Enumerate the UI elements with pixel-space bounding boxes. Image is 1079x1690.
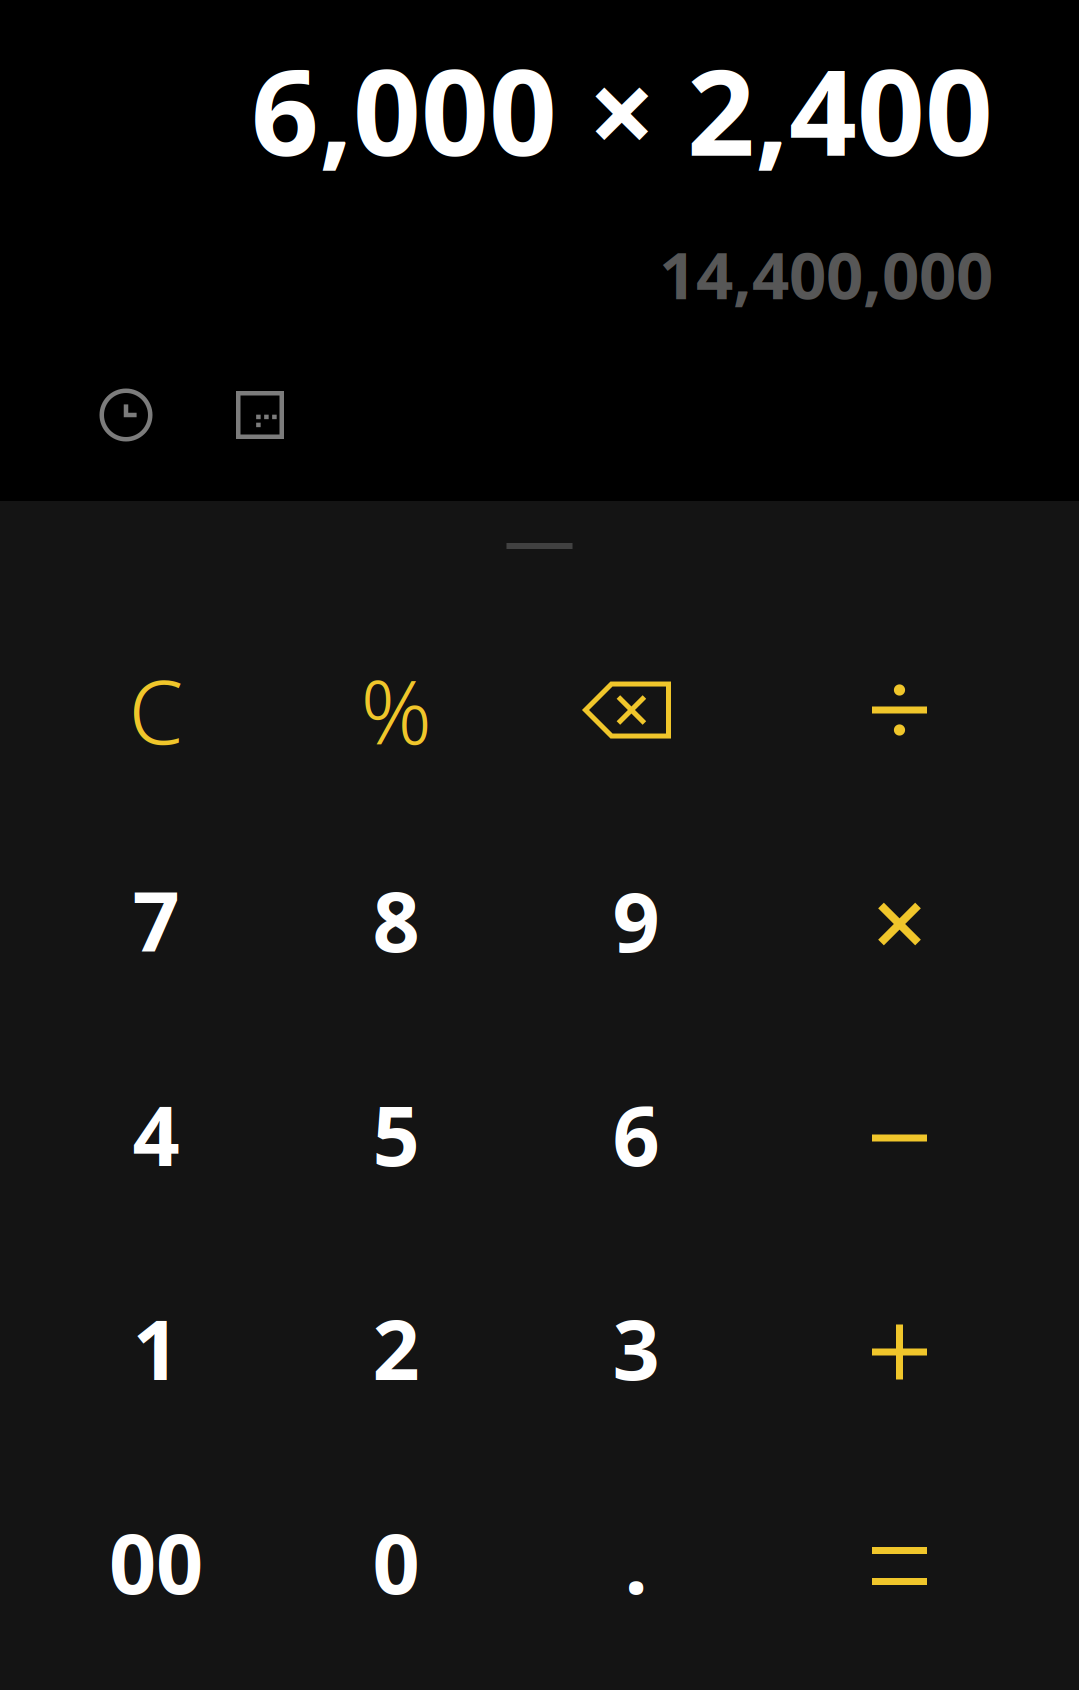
staticText: C — [128, 652, 183, 768]
button[interactable]: 1 — [36, 1245, 276, 1459]
staticText: 5 — [372, 1079, 419, 1189]
staticText: 9 — [612, 865, 659, 975]
button[interactable]: 4 — [36, 1031, 276, 1245]
staticText: . — [624, 1507, 647, 1617]
button[interactable]: 8 — [276, 817, 516, 1031]
button[interactable]: 6 — [516, 1031, 756, 1245]
button[interactable]: Add — [756, 1245, 1043, 1459]
button[interactable]: Multiply — [756, 817, 1043, 1031]
staticText: 6,000 × 2,400 — [251, 31, 993, 189]
staticText: 8 — [372, 865, 419, 975]
button[interactable]: Equals — [756, 1459, 1043, 1673]
staticText: 2 — [372, 1293, 419, 1403]
button[interactable]: 00 — [36, 1459, 276, 1673]
staticText: % — [360, 652, 431, 768]
button[interactable]: Delete — [516, 603, 756, 817]
button[interactable]: Unit converter — [217, 372, 303, 458]
button[interactable]: Divide — [756, 603, 1043, 817]
staticText: 3 — [612, 1293, 659, 1403]
button[interactable]: 9 — [516, 817, 756, 1031]
button[interactable]: Clear — [36, 603, 276, 817]
staticText: 7 — [132, 865, 179, 975]
button[interactable]: 3 — [516, 1245, 756, 1459]
button[interactable]: 7 — [36, 817, 276, 1031]
button[interactable]: History — [83, 372, 169, 458]
button[interactable]: 2 — [276, 1245, 516, 1459]
button[interactable]: Decimal point — [516, 1459, 756, 1673]
staticText: 00 — [109, 1507, 203, 1617]
staticText: 6 — [612, 1079, 659, 1189]
staticText: 0 — [372, 1507, 419, 1617]
button[interactable]: Subtract — [756, 1031, 1043, 1245]
button[interactable]: 5 — [276, 1031, 516, 1245]
button[interactable]: 0 — [276, 1459, 516, 1673]
staticText: 4 — [132, 1079, 179, 1189]
button[interactable]: Percent — [276, 603, 516, 817]
staticText: 14,400,000 — [659, 231, 993, 317]
staticText: 1 — [132, 1293, 179, 1403]
